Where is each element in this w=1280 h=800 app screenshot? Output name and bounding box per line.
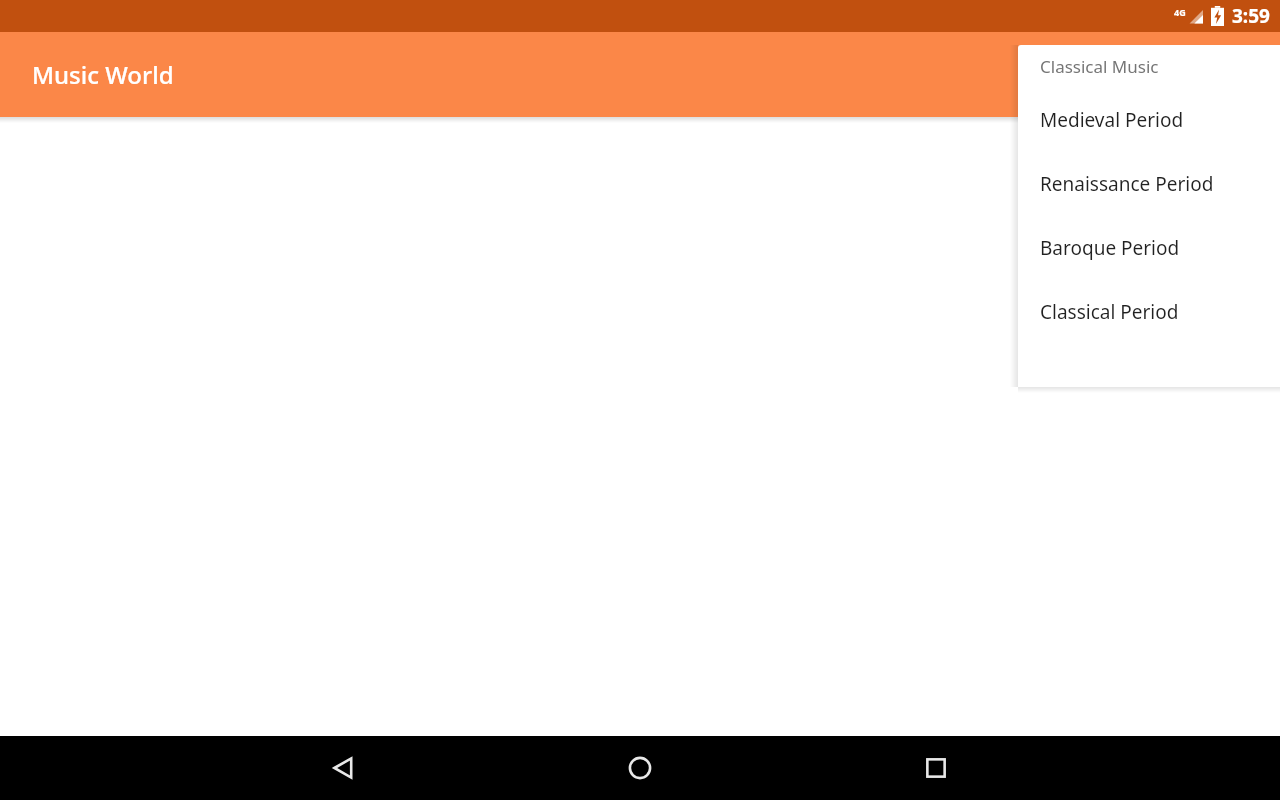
button[interactable]: Medieval Period bbox=[1018, 88, 1280, 152]
button[interactable]: Recents bbox=[908, 740, 964, 796]
button[interactable]: Baroque Period bbox=[1018, 216, 1280, 280]
button[interactable]: Back bbox=[316, 740, 372, 796]
staticText: Classical Period bbox=[1040, 299, 1179, 325]
button[interactable]: Classical Music bbox=[1018, 45, 1280, 88]
button[interactable]: Classical Period bbox=[1018, 280, 1280, 344]
button[interactable]: Renaissance Period bbox=[1018, 152, 1280, 216]
staticText: Renaissance Period bbox=[1040, 171, 1214, 197]
staticText: Classical Music bbox=[1040, 55, 1159, 78]
staticText: Medieval Period bbox=[1040, 107, 1184, 133]
staticText: 4G bbox=[1174, 6, 1186, 18]
staticText: Baroque Period bbox=[1040, 235, 1180, 261]
staticText: Music World bbox=[32, 58, 174, 91]
staticText: 3:59 bbox=[1232, 3, 1270, 29]
button[interactable]: Home bbox=[612, 740, 668, 796]
